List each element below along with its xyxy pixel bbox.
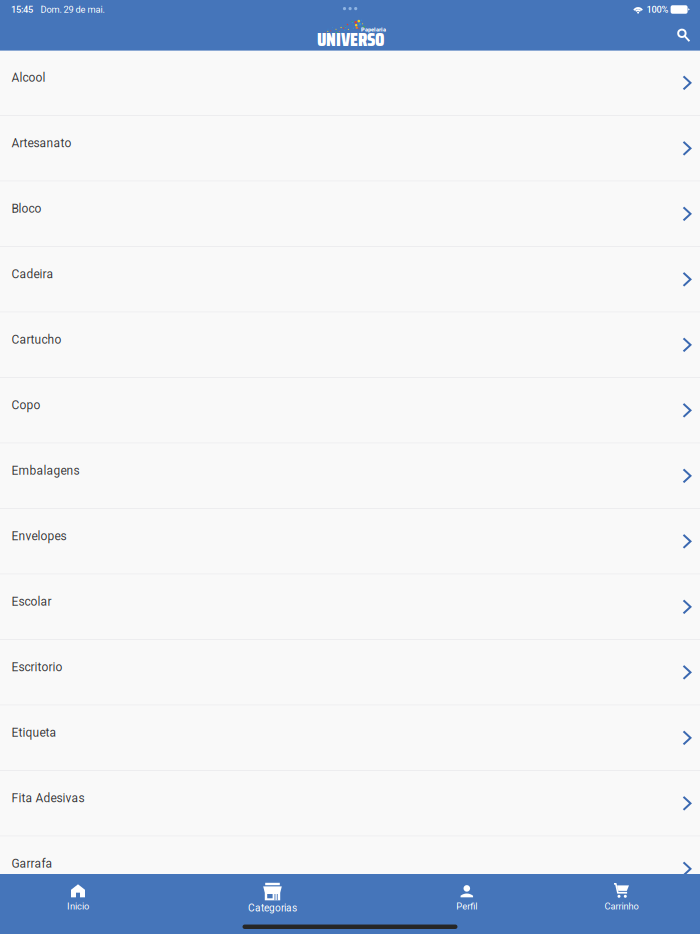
button[interactable]: Cartucho	[0, 313, 700, 378]
button[interactable]: Alcool	[0, 51, 700, 116]
staticText: Cartucho	[11, 332, 61, 347]
staticText: Garrafa	[11, 856, 52, 871]
button[interactable]: Fita Adesivas	[0, 771, 700, 837]
button[interactable]: Cadeira	[0, 247, 700, 313]
staticText: Escritorio	[11, 660, 62, 674]
staticText: Bloco	[11, 201, 41, 216]
staticText: Carrinho	[604, 901, 638, 912]
button[interactable]: Perfil	[407, 874, 527, 934]
button[interactable]: Artesanato	[0, 116, 700, 182]
staticText: 15:45	[11, 4, 33, 15]
button[interactable]: Copo	[0, 378, 700, 444]
staticText: Inicio	[67, 901, 89, 912]
staticText: Dom. 29 de mai.	[40, 4, 104, 15]
staticText: Alcool	[11, 70, 45, 85]
button[interactable]: Search	[669, 21, 699, 51]
button[interactable]: Garrafa	[0, 837, 700, 902]
staticText: 100%	[647, 4, 669, 15]
staticText: Categorias	[248, 902, 297, 914]
button[interactable]: Grampeador	[0, 902, 700, 934]
button[interactable]: Carrinho	[561, 874, 681, 934]
staticText: Etiqueta	[11, 725, 56, 740]
staticText: Papelaria	[361, 26, 386, 33]
staticText: Artesanato	[11, 136, 71, 150]
staticText: Copo	[11, 398, 40, 412]
button[interactable]: Categorias	[212, 874, 332, 934]
button[interactable]: Embalagens	[0, 444, 700, 509]
staticText: Escolar	[11, 594, 51, 609]
button[interactable]: Bloco	[0, 182, 700, 247]
button[interactable]: Escritorio	[0, 640, 700, 706]
staticText: Envelopes	[11, 529, 66, 543]
button[interactable]: Etiqueta	[0, 706, 700, 771]
staticText: UNIVERSO	[317, 25, 385, 54]
staticText: Perfil	[456, 901, 477, 912]
staticText: Cadeira	[11, 267, 53, 281]
button[interactable]: Inicio	[18, 874, 138, 934]
button[interactable]: Envelopes	[0, 509, 700, 575]
button[interactable]: Escolar	[0, 575, 700, 640]
staticText: Embalagens	[11, 463, 79, 478]
staticText: Fita Adesivas	[11, 791, 84, 805]
